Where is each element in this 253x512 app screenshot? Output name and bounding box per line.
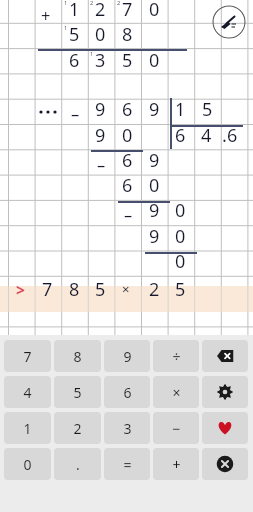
staticText: 2: [117, 0, 121, 7]
staticText: 8: [69, 277, 80, 302]
staticText: 1: [64, 0, 68, 7]
staticText: 5: [122, 48, 133, 73]
staticText: 2: [95, 0, 106, 22]
staticText: +: [172, 455, 181, 474]
staticText: 1: [23, 419, 32, 438]
staticText: 5: [73, 383, 82, 402]
staticText: 4: [201, 123, 212, 148]
button[interactable]: 1: [4, 412, 51, 444]
button[interactable]: Favorite: [202, 412, 248, 444]
staticText: 7: [122, 0, 133, 22]
button[interactable]: 8: [54, 340, 101, 372]
button[interactable]: .: [54, 448, 101, 480]
staticText: 3: [123, 419, 132, 438]
staticText: 6: [175, 123, 186, 148]
staticText: 0: [95, 22, 106, 47]
staticText: 0: [175, 198, 186, 223]
staticText: ÷: [172, 347, 181, 366]
staticText: 9: [149, 97, 160, 122]
button[interactable]: Close: [202, 448, 248, 480]
staticText: 6: [69, 48, 80, 73]
button[interactable]: +: [153, 448, 199, 480]
staticText: –: [97, 153, 106, 175]
staticText: 2: [73, 419, 82, 438]
staticText: 6: [122, 97, 133, 122]
staticText: .: [76, 455, 80, 474]
staticText: 5: [202, 97, 213, 122]
staticText: 0: [122, 123, 133, 148]
button[interactable]: =: [104, 448, 150, 480]
button[interactable]: 9: [104, 340, 150, 372]
staticText: 8: [122, 22, 133, 47]
staticText: 0: [175, 249, 186, 274]
button[interactable]: Settings: [202, 376, 248, 408]
staticText: 1: [69, 0, 80, 22]
button[interactable]: 2: [54, 412, 101, 444]
button[interactable]: ×: [153, 376, 199, 408]
button[interactable]: 3: [104, 412, 150, 444]
staticText: 0: [175, 224, 186, 249]
staticText: 9: [95, 123, 106, 148]
button[interactable]: Backspace: [202, 340, 248, 372]
staticText: 3: [95, 48, 106, 73]
staticText: 0: [149, 48, 160, 73]
button[interactable]: 0: [4, 448, 51, 480]
staticText: −: [172, 419, 181, 438]
button[interactable]: [0, 286, 253, 312]
button[interactable]: 4: [4, 376, 51, 408]
staticText: 9: [149, 224, 160, 249]
button[interactable]: ÷: [153, 340, 199, 372]
staticText: 8: [73, 347, 82, 366]
staticText: ×: [172, 383, 181, 402]
staticText: 7: [23, 347, 32, 366]
staticText: 5: [95, 277, 106, 302]
button[interactable]: 5: [54, 376, 101, 408]
button[interactable]: −: [153, 412, 199, 444]
staticText: 7: [42, 277, 53, 302]
staticText: 1: [90, 50, 94, 58]
staticText: 0: [149, 173, 160, 198]
button[interactable]: 6: [104, 376, 150, 408]
staticText: 5: [69, 22, 80, 47]
staticText: 2: [149, 277, 160, 302]
staticText: 5: [175, 277, 186, 302]
staticText: 9: [95, 97, 106, 122]
staticText: 6: [122, 148, 133, 173]
staticText: 6: [227, 123, 238, 148]
staticText: ×: [122, 280, 130, 298]
staticText: –: [71, 102, 80, 124]
staticText: >: [16, 279, 25, 300]
staticText: 2: [90, 0, 94, 7]
button[interactable]: 7: [4, 340, 51, 372]
staticText: 9: [149, 148, 160, 173]
staticText: +: [41, 4, 51, 26]
staticText: 1: [175, 97, 186, 122]
staticText: .: [222, 123, 227, 148]
staticText: 9: [123, 347, 132, 366]
staticText: 1: [64, 24, 68, 32]
staticText: 0: [149, 0, 160, 22]
staticText: 6: [122, 173, 133, 198]
staticText: 4: [23, 383, 32, 402]
staticText: 6: [123, 383, 132, 402]
staticText: 9: [149, 198, 160, 223]
staticText: 0: [23, 455, 32, 474]
button[interactable]: Clear worksheet: [212, 5, 246, 39]
staticText: =: [123, 455, 132, 474]
staticText: –: [124, 203, 133, 225]
